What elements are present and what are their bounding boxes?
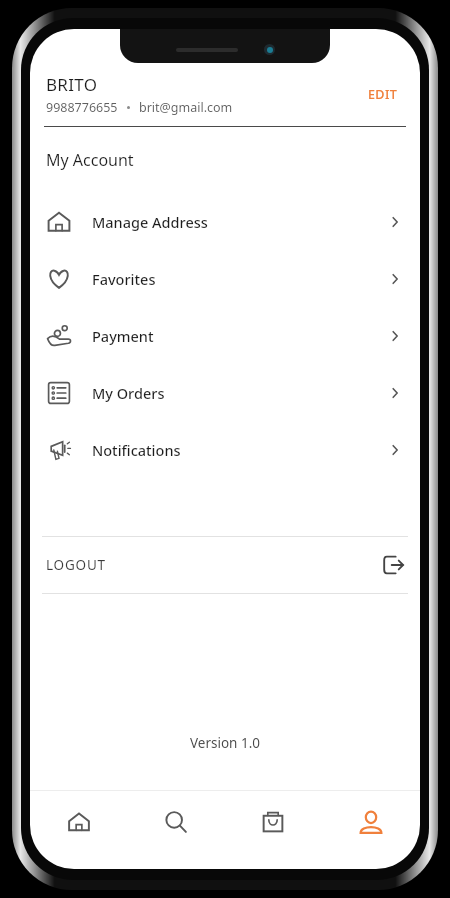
button[interactable]: EDIT: [362, 80, 404, 109]
staticText: 9988776655: [46, 99, 118, 116]
staticText: brit@gmail.com: [139, 99, 233, 116]
staticText: EDIT: [368, 86, 398, 103]
staticText: My Account: [46, 149, 134, 171]
button[interactable]: Favorites: [30, 250, 420, 307]
button[interactable]: Search: [127, 791, 224, 853]
button[interactable]: Payment: [30, 307, 420, 364]
staticText: LOGOUT: [46, 556, 382, 574]
staticText: Favorites: [92, 269, 386, 289]
button[interactable]: Home: [30, 791, 127, 853]
staticText: Version 1.0: [30, 734, 420, 752]
button[interactable]: My Orders: [30, 364, 420, 421]
button[interactable]: Profile: [322, 791, 420, 853]
staticText: My Orders: [92, 383, 386, 403]
staticText: Payment: [92, 326, 386, 346]
button[interactable]: Manage Address: [30, 193, 420, 250]
button[interactable]: LOGOUT: [30, 537, 420, 593]
staticText: Notifications: [92, 440, 386, 460]
staticText: Manage Address: [92, 212, 386, 232]
button[interactable]: Notifications: [30, 421, 420, 478]
button[interactable]: Bag: [224, 791, 322, 853]
staticText: BRITO: [46, 73, 98, 96]
